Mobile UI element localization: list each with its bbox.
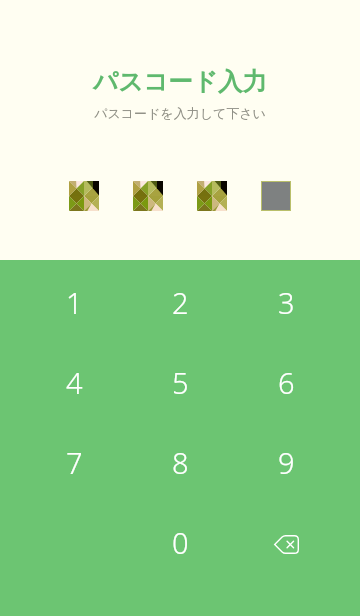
staticText: パスコードを入力して下さい [94, 105, 266, 121]
button[interactable]: Backspace [233, 502, 339, 582]
button[interactable]: 6 [233, 342, 339, 422]
button[interactable]: 0 [127, 502, 233, 582]
button[interactable]: 1 [21, 262, 127, 342]
staticText: 4 [66, 363, 83, 402]
staticText: パスコード入力 [93, 66, 267, 97]
staticText: 2 [172, 283, 189, 322]
staticText: 7 [66, 443, 83, 482]
button[interactable]: 7 [21, 422, 127, 502]
button[interactable]: 9 [233, 422, 339, 502]
button[interactable]: 2 [127, 262, 233, 342]
button[interactable]: 4 [21, 342, 127, 422]
staticText: 9 [278, 443, 295, 482]
staticText: 1 [66, 283, 83, 322]
staticText: 5 [172, 363, 189, 402]
button[interactable]: 5 [127, 342, 233, 422]
staticText: 3 [278, 283, 295, 322]
other: Backspace [274, 535, 299, 554]
staticText: 6 [278, 363, 295, 402]
button[interactable]: 3 [233, 262, 339, 342]
button[interactable]: 8 [127, 422, 233, 502]
staticText: 0 [172, 523, 189, 562]
staticText: 8 [172, 443, 189, 482]
